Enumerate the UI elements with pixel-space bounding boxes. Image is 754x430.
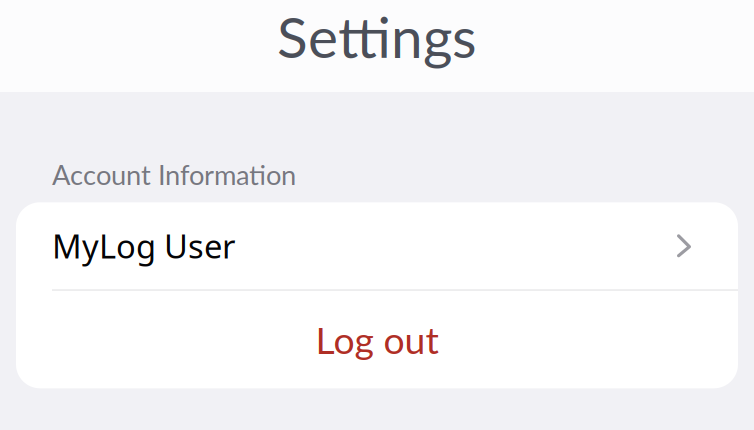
button[interactable]: Log out (16, 291, 738, 388)
staticText: MyLog User (52, 224, 235, 268)
button[interactable]: MyLog User (16, 202, 738, 289)
staticText: Settings (277, 2, 477, 70)
staticText: Account Information (52, 158, 296, 191)
staticText: Log out (315, 317, 438, 362)
